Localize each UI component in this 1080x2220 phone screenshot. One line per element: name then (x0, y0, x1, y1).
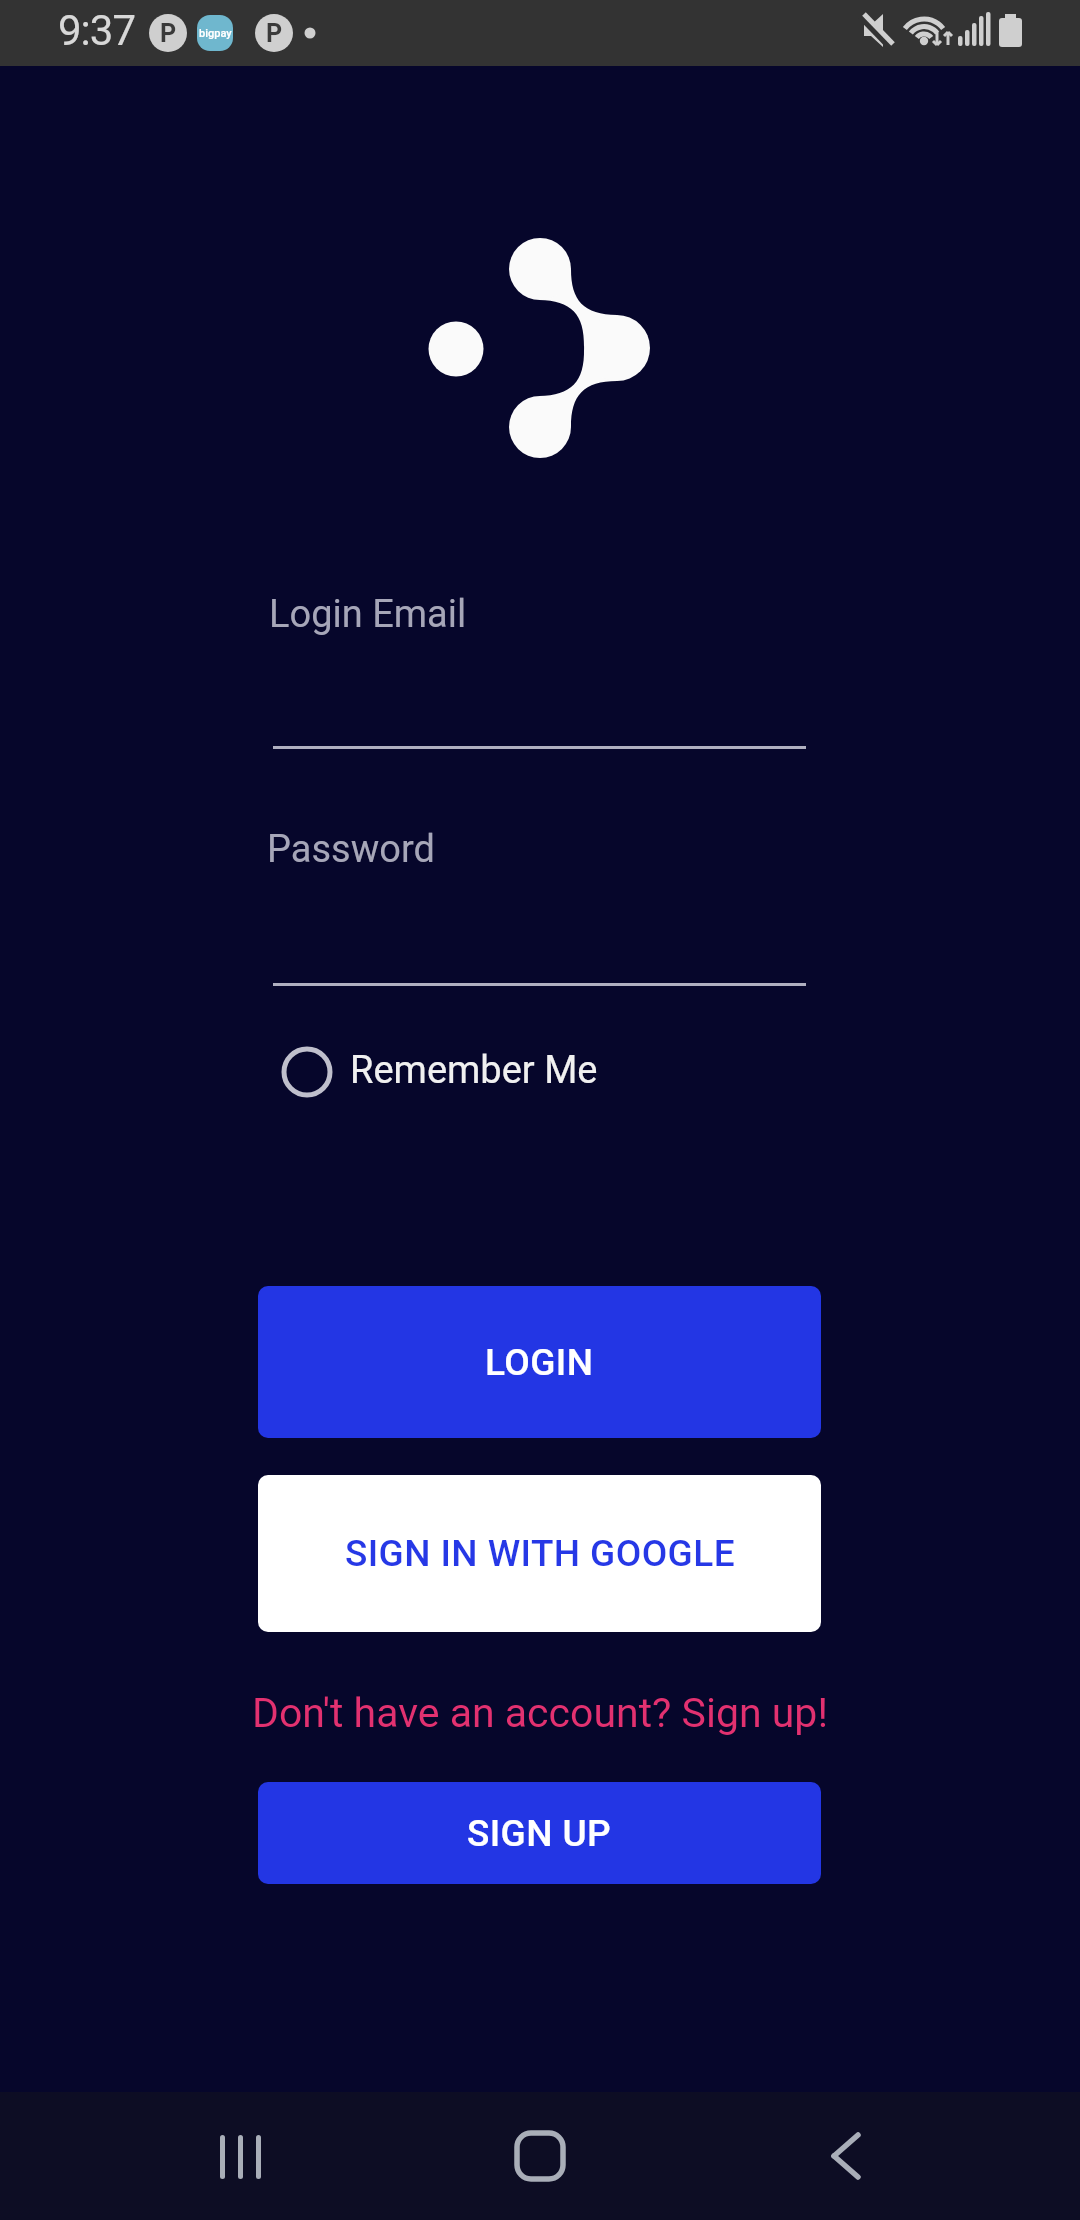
button[interactable]: SIGN IN WITH GOOGLE (258, 1475, 821, 1632)
button[interactable]: SIGN UP (258, 1782, 821, 1884)
button[interactable]: Remember Me (283, 1046, 598, 1094)
staticText: 9:37 (58, 6, 135, 55)
button[interactable]: Don't have an account? Sign up! (252, 1689, 828, 1737)
button[interactable]: LOGIN (258, 1286, 821, 1438)
staticText: SIGN IN WITH GOOGLE (345, 1532, 735, 1575)
button[interactable] (190, 2094, 290, 2218)
staticText: Login Email (269, 592, 467, 637)
staticText: SIGN UP (467, 1812, 612, 1855)
staticText: Password (267, 827, 435, 872)
staticText: Remember Me (350, 1048, 598, 1093)
staticText: P (266, 19, 283, 48)
staticText: P (160, 19, 177, 48)
staticText: bigpay (199, 27, 232, 40)
button[interactable] (490, 2094, 590, 2218)
staticText: LOGIN (485, 1341, 594, 1384)
button[interactable] (795, 2094, 895, 2218)
